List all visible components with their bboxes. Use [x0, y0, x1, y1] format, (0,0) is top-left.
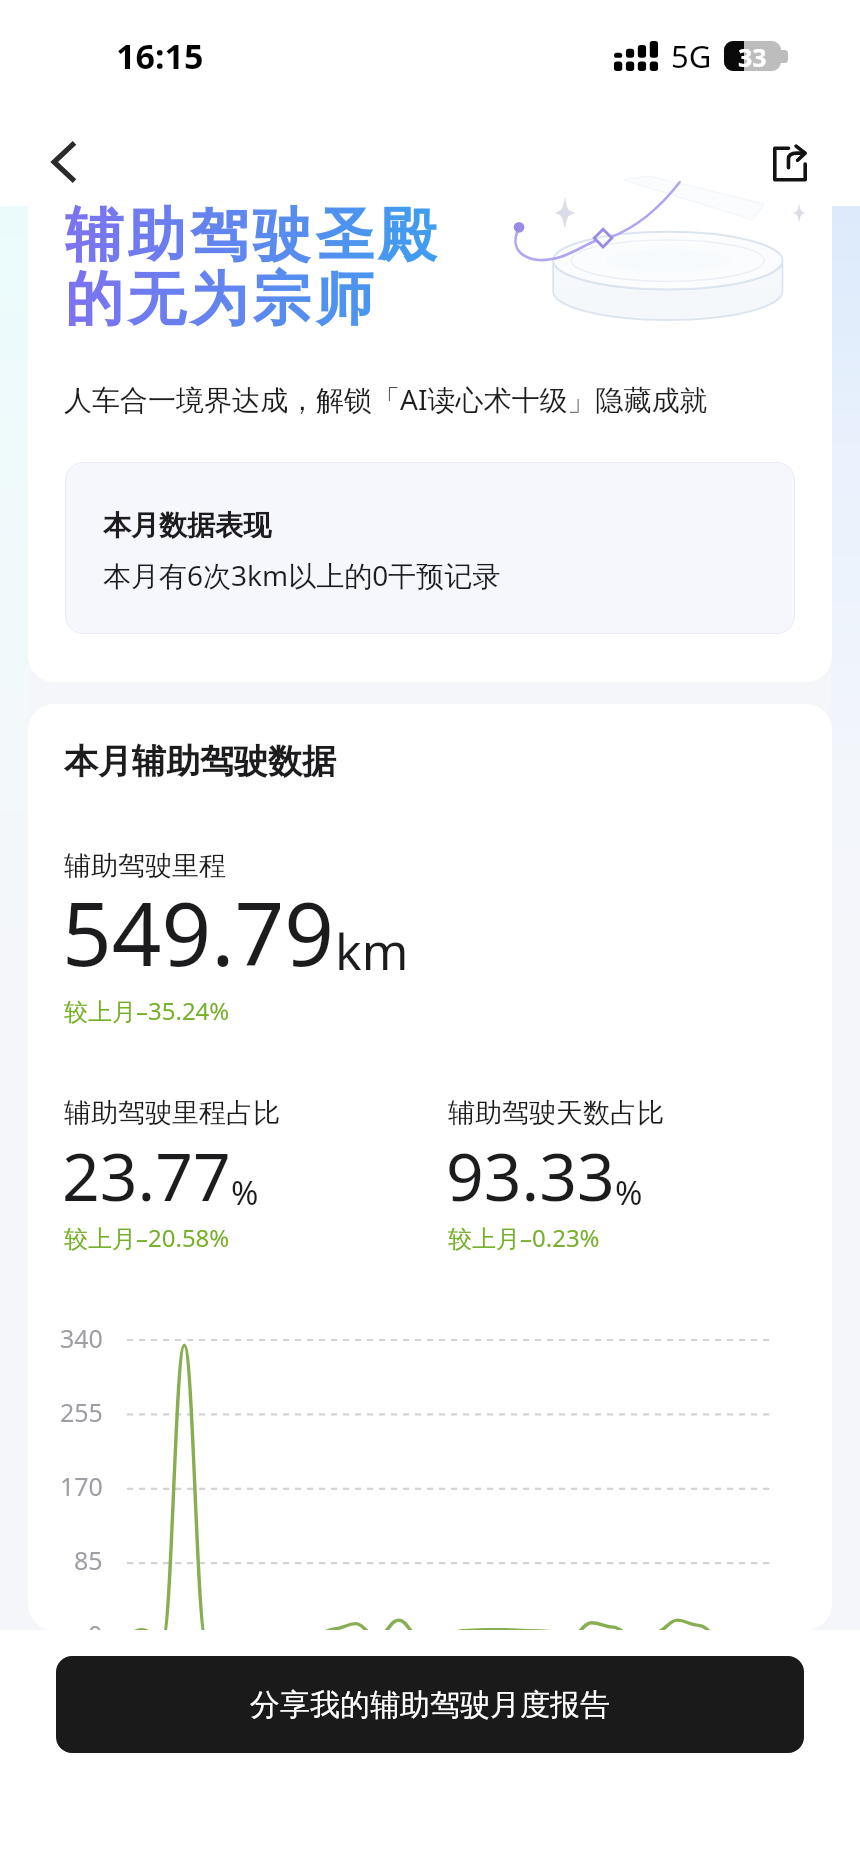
staticText: 255: [60, 1395, 103, 1429]
staticText: 93.33: [446, 1130, 615, 1220]
staticText: 0: [88, 1617, 103, 1630]
staticText: 较上月–35.24%: [64, 994, 230, 1027]
staticText: 170: [60, 1469, 103, 1503]
button[interactable]: 本月数据表现: [65, 462, 795, 634]
staticText: 16:15: [116, 33, 204, 79]
button[interactable]: Share: [761, 135, 819, 193]
button[interactable]: 分享我的辅助驾驶月度报告: [56, 1656, 804, 1753]
staticText: 较上月–0.23%: [448, 1221, 600, 1254]
staticText: 辅助驾驶里程: [64, 849, 226, 883]
staticText: 辅助驾驶圣殿 的无为宗师: [65, 199, 441, 336]
button[interactable]: Back: [34, 133, 92, 191]
staticText: 本月辅助驾驶数据: [64, 740, 336, 783]
staticText: km: [335, 917, 409, 985]
staticText: 辅助驾驶里程占比: [64, 1096, 280, 1130]
staticText: 本月数据表现: [103, 508, 271, 543]
staticText: 85: [74, 1543, 103, 1577]
staticText: %: [231, 1170, 259, 1215]
staticText: 5G: [671, 35, 712, 77]
staticText: 分享我的辅助驾驶月度报告: [250, 1686, 610, 1724]
staticText: 33: [738, 40, 767, 70]
staticText: 本月有6次3km以上的0干预记录: [103, 556, 501, 594]
staticText: 340: [60, 1321, 103, 1355]
staticText: 辅助驾驶天数占比: [448, 1096, 664, 1130]
staticText: %: [615, 1170, 643, 1215]
staticText: 23.77: [62, 1130, 231, 1220]
staticText: 较上月–20.58%: [64, 1221, 230, 1254]
staticText: 人车合一境界达成，解锁「AI读心术十级」隐藏成就: [64, 380, 708, 418]
staticText: 549.79: [62, 873, 335, 991]
